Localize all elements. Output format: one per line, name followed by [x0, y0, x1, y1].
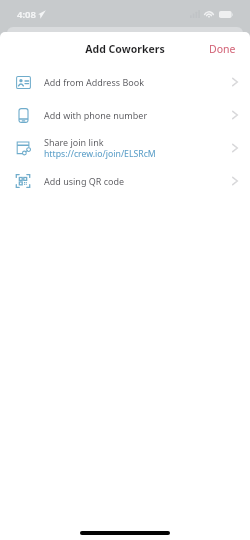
- button[interactable]: Done: [197, 36, 250, 62]
- button[interactable]: Add from Address Book: [0, 65, 250, 98]
- staticText: Add with phone number: [44, 109, 148, 121]
- button[interactable]: Share join link: [0, 131, 250, 164]
- staticText: Add Coworkers: [85, 42, 165, 56]
- button[interactable]: Add using QR code: [0, 164, 250, 197]
- staticText: https://crew.io/join/ELSRcM: [44, 148, 156, 160]
- staticText: Share join link: [44, 136, 104, 148]
- button[interactable]: Add with phone number: [0, 98, 250, 131]
- staticText: Done: [209, 42, 236, 56]
- staticText: Add from Address Book: [44, 76, 144, 88]
- staticText: Add using QR code: [44, 175, 125, 187]
- staticText: 4:08: [17, 8, 36, 21]
